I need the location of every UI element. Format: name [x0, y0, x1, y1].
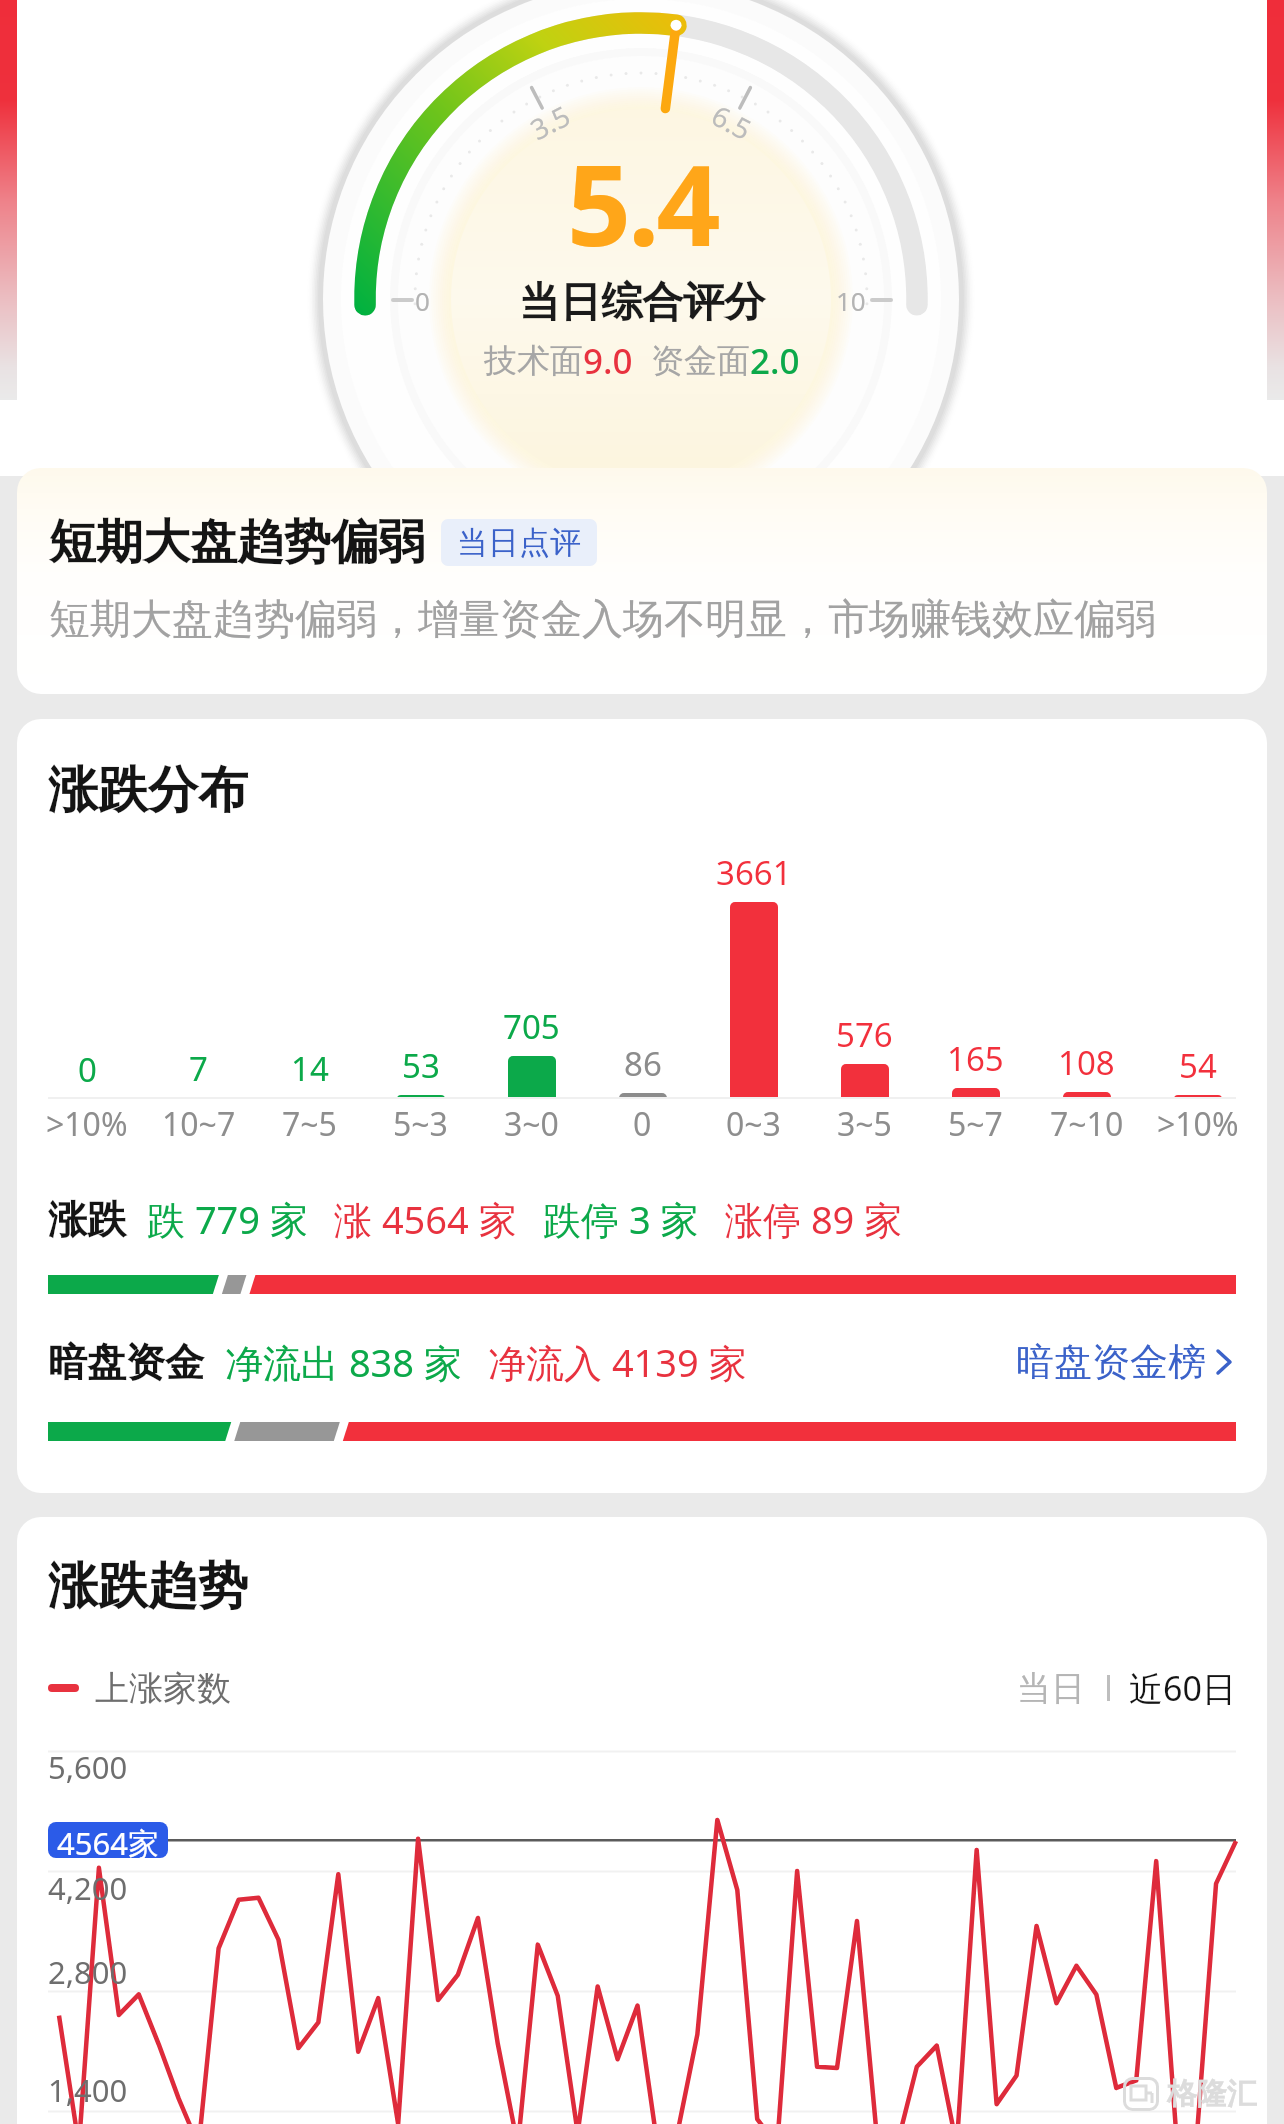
- staticText: 576: [836, 1012, 893, 1057]
- button[interactable]: 暗盘资金榜: [1016, 1338, 1236, 1386]
- staticText: 净流入 4139 家: [488, 1336, 747, 1388]
- staticText: 9.0: [583, 337, 633, 385]
- staticText: 10~7: [162, 1102, 236, 1146]
- staticText: 近60日: [1129, 1665, 1236, 1711]
- staticText: 165: [947, 1036, 1004, 1081]
- staticText: 0: [633, 1102, 652, 1146]
- staticText: 当日综合评分: [519, 277, 765, 329]
- staticText: 当日点评: [457, 523, 581, 562]
- staticText: 5~3: [393, 1102, 448, 1146]
- staticText: 涨跌趋势: [48, 1555, 248, 1618]
- staticText: 2.0: [750, 337, 800, 385]
- staticText: 4564家: [57, 1822, 159, 1858]
- staticText: 跌 779 家: [147, 1193, 308, 1245]
- staticText: 净流出 838 家: [225, 1336, 462, 1388]
- button[interactable]: 短期大盘趋势偏弱: [17, 468, 1267, 694]
- staticText: 涨跌: [48, 1195, 126, 1244]
- staticText: 3661: [716, 850, 792, 895]
- staticText: 10: [836, 283, 866, 318]
- staticText: 资金面: [651, 340, 750, 382]
- staticText: 705: [503, 1004, 560, 1049]
- staticText: 2,800: [48, 1951, 128, 1993]
- staticText: 跌停 3 家: [543, 1193, 699, 1245]
- staticText: 53: [402, 1043, 440, 1088]
- staticText: >10%: [46, 1102, 128, 1146]
- staticText: 4,200: [48, 1867, 128, 1909]
- staticText: 0: [78, 1047, 97, 1092]
- staticText: 108: [1058, 1040, 1115, 1085]
- staticText: 3.5: [523, 96, 576, 148]
- button[interactable]: 当日: [1017, 1667, 1085, 1710]
- staticText: 7: [189, 1046, 208, 1091]
- staticText: 3~0: [504, 1102, 559, 1146]
- staticText: 86: [624, 1041, 662, 1086]
- staticText: 3~5: [837, 1102, 892, 1146]
- staticText: 6.5: [705, 96, 758, 148]
- staticText: 涨 4564 家: [334, 1193, 517, 1245]
- staticText: 短期大盘趋势偏弱，增量资金入场不明显，市场赚钱效应偏弱: [49, 594, 1156, 646]
- staticText: 涨停 89 家: [725, 1193, 903, 1245]
- staticText: 0: [415, 283, 430, 318]
- staticText: 0~3: [726, 1102, 781, 1146]
- staticText: 涨跌分布: [48, 759, 248, 822]
- staticText: 暗盘资金榜: [1016, 1338, 1206, 1386]
- staticText: 暗盘资金: [48, 1338, 204, 1387]
- staticText: 上涨家数: [95, 1667, 231, 1710]
- staticText: 技术面: [484, 340, 583, 382]
- staticText: 5~7: [948, 1102, 1003, 1146]
- staticText: 7~10: [1050, 1102, 1124, 1146]
- staticText: 54: [1179, 1043, 1217, 1088]
- staticText: 1,400: [48, 2069, 128, 2111]
- staticText: 7~5: [282, 1102, 337, 1146]
- staticText: 14: [291, 1046, 329, 1091]
- staticText: 短期大盘趋势偏弱: [49, 513, 425, 572]
- staticText: 5,600: [48, 1746, 128, 1788]
- staticText: 格隆汇: [1167, 2075, 1257, 2113]
- staticText: 5.4: [567, 126, 718, 279]
- button[interactable]: 近60日: [1129, 1665, 1236, 1711]
- staticText: >10%: [1157, 1102, 1239, 1146]
- staticText: 当日: [1017, 1667, 1085, 1710]
